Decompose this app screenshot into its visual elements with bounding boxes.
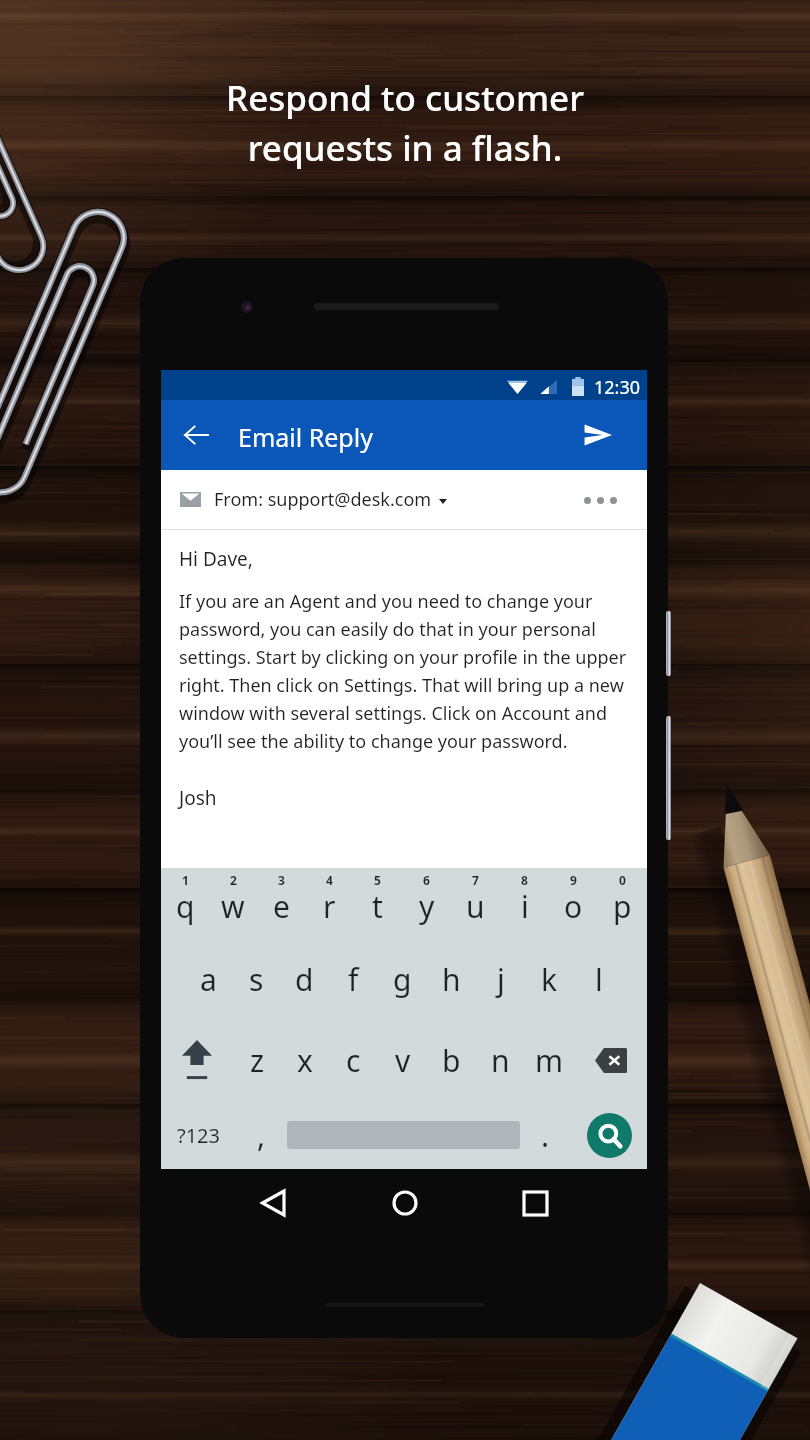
staticText: v — [395, 1040, 411, 1081]
button[interactable]: . — [520, 1101, 571, 1169]
button[interactable]: 1 — [161, 868, 209, 938]
button[interactable]: c — [329, 1020, 378, 1101]
button[interactable]: d — [280, 938, 329, 1020]
staticText: , — [257, 1115, 266, 1156]
staticText: p — [613, 886, 632, 927]
staticText: c — [346, 1040, 361, 1081]
button[interactable]: 6 — [402, 868, 451, 938]
staticText: 6 — [423, 872, 430, 888]
button[interactable]: 8 — [500, 868, 549, 938]
button[interactable]: Back — [171, 410, 221, 460]
staticText: l — [595, 959, 603, 1000]
staticText: 12:30 — [594, 375, 641, 400]
button[interactable]: a — [184, 938, 232, 1020]
staticText: o — [564, 886, 583, 927]
button[interactable]: s — [232, 938, 280, 1020]
staticText: i — [521, 886, 529, 927]
button[interactable]: k — [525, 938, 574, 1020]
staticText: s — [249, 959, 264, 1000]
staticText: u — [466, 886, 485, 927]
button[interactable]: 9 — [549, 868, 598, 938]
button[interactable]: f — [329, 938, 378, 1020]
button[interactable]: 7 — [451, 868, 500, 938]
button[interactable]: Backspace — [574, 1020, 647, 1101]
button[interactable]: b — [427, 1020, 476, 1101]
staticText: 3 — [278, 872, 285, 888]
button[interactable]: , — [236, 1101, 287, 1169]
staticText: f — [348, 959, 359, 1000]
staticText: q — [176, 886, 195, 927]
button[interactable]: m — [525, 1020, 574, 1101]
staticText: 7 — [472, 872, 479, 888]
button[interactable]: More options — [575, 475, 625, 525]
button[interactable]: Space — [287, 1101, 520, 1169]
staticText: . — [541, 1115, 550, 1156]
staticText: 0 — [619, 872, 626, 888]
button[interactable]: Shift — [161, 1020, 233, 1101]
staticText: t — [372, 886, 383, 927]
button[interactable]: 0 — [598, 868, 647, 938]
staticText: w — [221, 886, 245, 927]
button[interactable]: 4 — [305, 868, 353, 938]
button[interactable]: l — [574, 938, 623, 1020]
staticText: e — [273, 886, 290, 927]
staticText: 2 — [230, 872, 237, 888]
staticText: z — [250, 1040, 265, 1081]
staticText: a — [200, 959, 217, 1000]
staticText: From: support@desk.com — [214, 487, 432, 512]
button[interactable]: Recents — [470, 1169, 601, 1237]
staticText: k — [541, 959, 558, 1000]
button[interactable]: From: support@desk.com — [161, 470, 647, 529]
staticText: 4 — [326, 872, 333, 888]
staticText: Josh — [179, 785, 217, 811]
staticText: d — [295, 959, 314, 1000]
staticText: r — [323, 886, 336, 927]
staticText: Hi Dave, — [179, 546, 253, 572]
button[interactable]: Send — [573, 410, 623, 460]
staticText: b — [442, 1040, 461, 1081]
staticText: Email Reply — [238, 420, 373, 454]
button[interactable]: ?123 — [161, 1101, 236, 1169]
staticText: g — [393, 959, 412, 1000]
button[interactable]: Home — [339, 1169, 470, 1237]
button[interactable]: x — [281, 1020, 329, 1101]
staticText: 9 — [570, 872, 577, 888]
button[interactable]: 2 — [209, 868, 257, 938]
staticText: m — [535, 1040, 564, 1081]
button[interactable]: Search — [571, 1101, 647, 1169]
button[interactable]: 5 — [353, 868, 402, 938]
staticText: x — [297, 1040, 313, 1081]
staticText: 1 — [182, 872, 189, 888]
staticText: y — [419, 886, 435, 927]
button[interactable]: g — [378, 938, 427, 1020]
staticText: j — [497, 959, 505, 1000]
button[interactable]: j — [476, 938, 525, 1020]
button[interactable]: v — [378, 1020, 427, 1101]
button[interactable]: n — [476, 1020, 525, 1101]
staticText: h — [442, 959, 461, 1000]
staticText: 8 — [521, 872, 528, 888]
button[interactable]: 3 — [257, 868, 305, 938]
staticText: Respond to customer requests in a flash. — [226, 74, 584, 171]
button[interactable]: z — [233, 1020, 281, 1101]
staticText: 5 — [374, 872, 381, 888]
button[interactable]: Back — [207, 1169, 339, 1237]
staticText: If you are an Agent and you need to chan… — [179, 589, 627, 753]
staticText: ?123 — [177, 1122, 220, 1149]
staticText: n — [491, 1040, 510, 1081]
button[interactable]: h — [427, 938, 476, 1020]
